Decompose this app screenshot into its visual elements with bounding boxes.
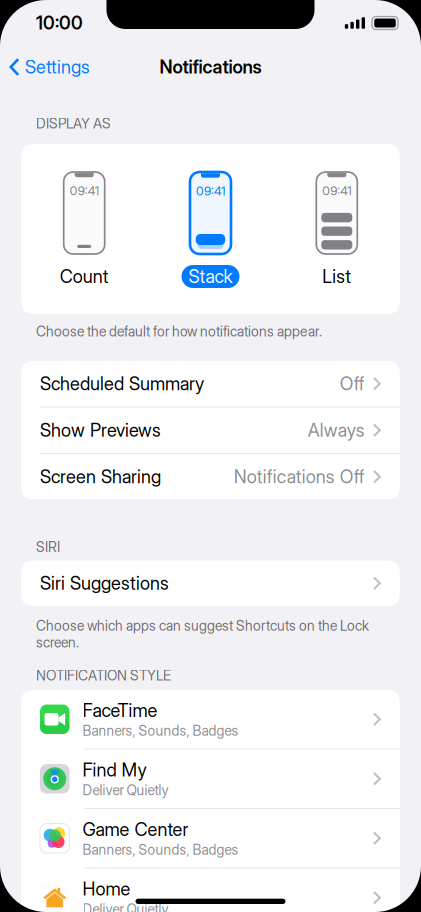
staticText: Banners, Sounds, Badges (82, 841, 238, 858)
staticText: 09:41 (70, 183, 99, 198)
staticText: List (322, 265, 351, 287)
button[interactable]: Game Center (21, 809, 400, 867)
staticText: 09:41 (196, 184, 225, 198)
staticText: NOTIFICATION STYLE (36, 667, 171, 684)
staticText: Notifications Off (234, 466, 365, 488)
button[interactable]: Home (21, 868, 400, 912)
staticText: Banners, Sounds, Badges (82, 722, 238, 739)
staticText: Choose which apps can suggest Shortcuts … (36, 617, 369, 651)
staticText: Home (82, 878, 130, 900)
button[interactable]: Settings (0, 45, 98, 89)
staticText: Scheduled Summary (40, 373, 204, 395)
button[interactable]: 09:41 (308, 172, 366, 288)
staticText: Count (60, 265, 109, 287)
staticText: Show Previews (40, 419, 161, 441)
staticText: Find My (82, 759, 146, 781)
staticText: Siri Suggestions (40, 572, 169, 594)
staticText: Choose the default for how notifications… (36, 323, 322, 340)
staticText: 09:41 (322, 183, 351, 198)
button[interactable]: Screen Sharing (21, 454, 400, 499)
staticText: Notifications (159, 56, 261, 78)
staticText: Off (340, 373, 365, 395)
staticText: Always (308, 419, 365, 441)
staticText: Screen Sharing (40, 466, 161, 488)
button[interactable]: Scheduled Summary (21, 361, 400, 406)
button[interactable]: 09:41 (181, 172, 239, 288)
staticText: Game Center (82, 818, 188, 840)
button[interactable]: Siri Suggestions (21, 560, 400, 606)
staticText: Deliver Quietly (82, 901, 168, 912)
button[interactable]: FaceTime (21, 690, 400, 748)
staticText: FaceTime (82, 699, 157, 721)
staticText: 10:00 (36, 12, 83, 34)
staticText: DISPLAY AS (36, 115, 111, 132)
staticText: Deliver Quietly (82, 782, 168, 799)
staticText: Settings (25, 56, 90, 78)
button[interactable]: 09:41 (55, 172, 113, 288)
staticText: SIRI (36, 539, 60, 555)
button[interactable]: Find My (21, 749, 400, 808)
staticText: Stack (188, 265, 232, 287)
button[interactable]: Show Previews (21, 407, 400, 453)
